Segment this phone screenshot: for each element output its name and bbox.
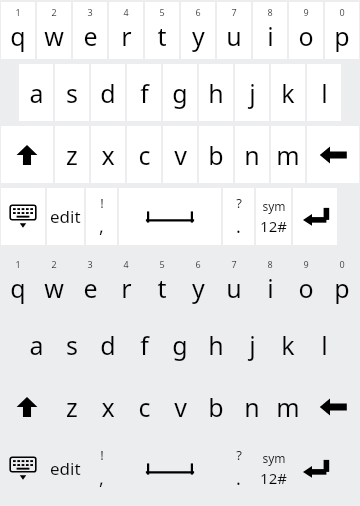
staticText: 12# [260,216,287,236]
button[interactable]: 4 [109,254,143,311]
staticText: d [100,76,116,110]
staticText: ! [100,446,104,464]
button[interactable]: j [235,316,269,373]
button[interactable]: h [199,64,233,121]
staticText: v [174,390,187,424]
button[interactable]: f [127,316,161,373]
button[interactable]: Shift [1,126,53,183]
button[interactable]: d [91,64,125,121]
staticText: m [276,138,300,172]
button[interactable]: l [307,64,341,121]
button[interactable]: 2 [37,254,71,311]
button[interactable]: k [271,316,305,373]
button[interactable]: 7 [217,254,251,311]
staticText: 12# [260,468,287,488]
staticText: c [138,390,151,424]
button[interactable]: 3 [73,2,107,59]
button[interactable]: 6 [181,2,215,59]
button[interactable]: v [163,126,197,183]
button[interactable]: k [271,64,305,121]
staticText: . [236,214,241,239]
staticText: p [334,19,350,53]
button[interactable]: Enter [293,440,337,497]
button[interactable]: 1 [1,2,35,59]
button[interactable]: l [307,316,341,373]
button[interactable]: m [271,126,305,183]
button[interactable]: 6 [181,254,215,311]
staticText: y [192,19,205,53]
button[interactable]: sym [256,188,291,245]
button[interactable]: s [55,64,89,121]
button[interactable]: Backspace [307,378,359,435]
button[interactable]: c [127,126,161,183]
staticText: i [267,19,274,53]
button[interactable]: 2 [37,2,71,59]
button[interactable]: Space [119,188,221,245]
staticText: 9 [303,6,309,18]
button[interactable]: Space [119,440,221,497]
button[interactable]: Backspace [307,126,359,183]
button[interactable]: z [55,378,89,435]
staticText: t [157,271,167,305]
button[interactable]: 3 [73,254,107,311]
button[interactable]: 1 [1,254,35,311]
button[interactable]: a [19,316,53,373]
button[interactable]: n [235,126,269,183]
button[interactable]: h [199,316,233,373]
staticText: 6 [195,6,201,18]
staticText: 0 [339,6,345,18]
staticText: 8 [267,6,273,18]
button[interactable]: z [55,126,89,183]
button[interactable]: 7 [217,2,251,59]
button[interactable]: ? [223,440,254,497]
button[interactable]: 8 [253,254,287,311]
button[interactable]: sym [256,440,291,497]
button[interactable]: 5 [145,2,179,59]
button[interactable]: 9 [289,2,323,59]
button[interactable]: ! [86,440,117,497]
button[interactable]: edit [47,440,84,497]
button[interactable]: c [127,378,161,435]
staticText: ? [236,446,242,464]
staticText: edit [50,457,81,480]
button[interactable]: a [19,64,53,121]
button[interactable]: b [199,126,233,183]
button[interactable]: 5 [145,254,179,311]
button[interactable]: 4 [109,2,143,59]
button[interactable]: n [235,378,269,435]
staticText: sym [262,198,286,214]
button[interactable]: ! [86,188,117,245]
staticText: 4 [123,258,129,270]
staticText: 5 [159,258,165,270]
staticText: g [172,328,188,362]
button[interactable]: Shift [1,378,53,435]
button[interactable]: 9 [289,254,323,311]
staticText: t [157,19,167,53]
button[interactable]: Hide keyboard [1,188,45,245]
button[interactable]: 0 [325,254,359,311]
button[interactable]: x [91,126,125,183]
button[interactable]: x [91,378,125,435]
button[interactable]: edit [47,188,84,245]
button[interactable]: f [127,64,161,121]
button[interactable]: g [163,64,197,121]
button[interactable]: g [163,316,197,373]
button[interactable]: m [271,378,305,435]
staticText: sym [262,450,286,466]
staticText: k [281,328,295,362]
button[interactable]: 8 [253,2,287,59]
button[interactable]: Enter [293,188,337,245]
button[interactable]: Hide keyboard [1,440,45,497]
staticText: j [249,328,256,362]
button[interactable]: d [91,316,125,373]
staticText: z [66,138,78,172]
staticText: q [10,271,26,305]
button[interactable]: b [199,378,233,435]
button[interactable]: s [55,316,89,373]
staticText: edit [50,205,81,228]
staticText: 9 [303,258,309,270]
button[interactable]: 0 [325,2,359,59]
button[interactable]: ? [223,188,254,245]
button[interactable]: v [163,378,197,435]
button[interactable]: j [235,64,269,121]
